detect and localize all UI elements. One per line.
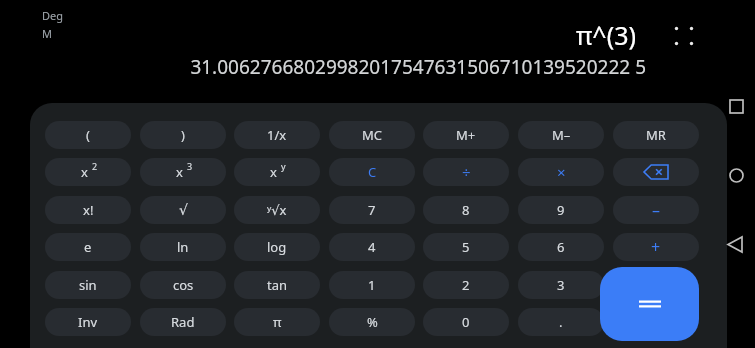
staticText: tan [267,276,288,294]
button[interactable]: 1 [329,271,415,299]
staticText: x! [83,201,94,219]
staticText: 6 [557,238,565,256]
button[interactable]: % [329,308,415,336]
staticText: ) [181,126,185,144]
button[interactable]: Back [721,230,749,258]
staticText: 4 [368,238,376,256]
staticText: ln [177,238,189,256]
button[interactable]: More options [669,21,699,51]
staticText: x [81,163,88,181]
staticText: ( [86,126,90,144]
staticText: – [652,199,661,221]
staticText: e [84,238,92,256]
staticText: x [176,163,183,181]
button[interactable]: 8 [423,196,509,224]
button[interactable]: + [613,233,699,261]
button[interactable]: Inv [45,308,131,336]
button[interactable]: 5 [423,233,509,261]
button[interactable]: ln [140,233,226,261]
staticText: M+ [456,126,476,144]
staticText: 8 [462,201,470,219]
button[interactable]: M+ [423,121,509,149]
staticText: ÷ [462,162,471,182]
staticText: MR [646,126,666,144]
staticText: log [267,238,287,256]
staticText: √ [179,202,188,218]
button[interactable]: 0 [423,308,509,336]
button[interactable]: tan [234,271,320,299]
button[interactable]: 3 [518,271,604,299]
staticText: y [281,160,286,172]
button[interactable]: sin [45,271,131,299]
staticText: Inv [78,313,98,331]
button[interactable]: √ [140,196,226,224]
button[interactable]: ÷ [423,158,509,186]
button[interactable]: π [234,308,320,336]
staticText: MC [362,126,383,144]
staticText: Rad [171,313,195,331]
button[interactable]: MR [613,121,699,149]
button[interactable]: ) [140,121,226,149]
staticText: 3 [557,276,565,294]
button[interactable]: Backspace [613,158,699,186]
staticText: π^(3) [576,18,636,52]
button[interactable]: x [45,158,131,186]
button[interactable]: × [518,158,604,186]
staticText: sin [79,276,97,294]
staticText: + [651,236,661,258]
button[interactable]: M– [518,121,604,149]
button[interactable]: 4 [329,233,415,261]
staticText: x [270,163,277,181]
staticText: . [559,313,563,331]
button[interactable]: Recents [722,92,750,120]
staticText: Deg [42,8,63,23]
button[interactable]: MC [329,121,415,149]
staticText: % [367,313,378,331]
button[interactable]: ( [45,121,131,149]
button[interactable]: 9 [518,196,604,224]
button[interactable]: 6 [518,233,604,261]
staticText: 31.0062766802998201754763150671013952022… [190,54,646,80]
button[interactable]: 2 [423,271,509,299]
button[interactable]: x! [45,196,131,224]
button[interactable]: x [234,158,320,186]
button[interactable]: – [613,196,699,224]
staticText: 3 [187,160,193,172]
button[interactable]: 7 [329,196,415,224]
button[interactable]: . [518,308,604,336]
button[interactable]: cos [140,271,226,299]
button[interactable]: Home [722,161,750,189]
staticText: cos [173,276,194,294]
button[interactable]: x [140,158,226,186]
button[interactable]: C [329,158,415,186]
button[interactable] [600,267,699,341]
staticText: 0 [462,313,470,331]
staticText: 9 [557,201,565,219]
staticText: 1 [368,276,376,294]
staticText: ʸ√x [267,201,287,219]
button[interactable]: e [45,233,131,261]
staticText: 2 [462,276,470,294]
staticText: 7 [368,201,376,219]
button[interactable]: 1/x [234,121,320,149]
staticText: π [273,313,282,331]
staticText: × [557,162,566,182]
staticText: 5 [462,238,470,256]
staticText: 1/x [267,126,287,144]
staticText: 2 [92,160,98,172]
staticText: M [42,26,52,41]
button[interactable]: Rad [140,308,226,336]
button[interactable]: log [234,233,320,261]
staticText: M– [552,126,571,144]
staticText: C [368,163,377,181]
button[interactable]: ʸ√x [234,196,320,224]
